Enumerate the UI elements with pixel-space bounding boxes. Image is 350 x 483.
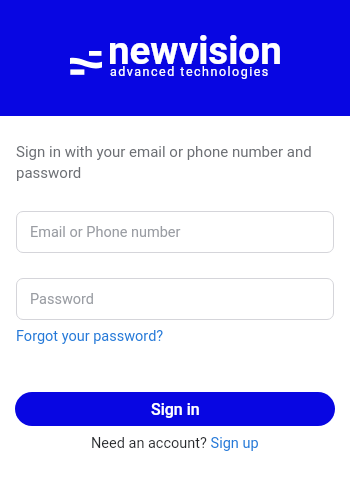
staticText: Password (30, 291, 95, 308)
staticText: Sign in with your email or phone number … (16, 143, 312, 182)
button[interactable]: Password (16, 278, 334, 320)
staticText: Email or Phone number (30, 224, 181, 241)
button[interactable]: Sign in (15, 392, 335, 426)
button[interactable]: Email or Phone number (16, 211, 334, 253)
button[interactable]: Forgot your password? (16, 328, 164, 345)
staticText: advanced technologies (110, 64, 270, 79)
staticText: newvision (108, 28, 282, 73)
button[interactable]: Need an account? Sign up (91, 435, 259, 452)
staticText: Sign in (151, 400, 200, 419)
